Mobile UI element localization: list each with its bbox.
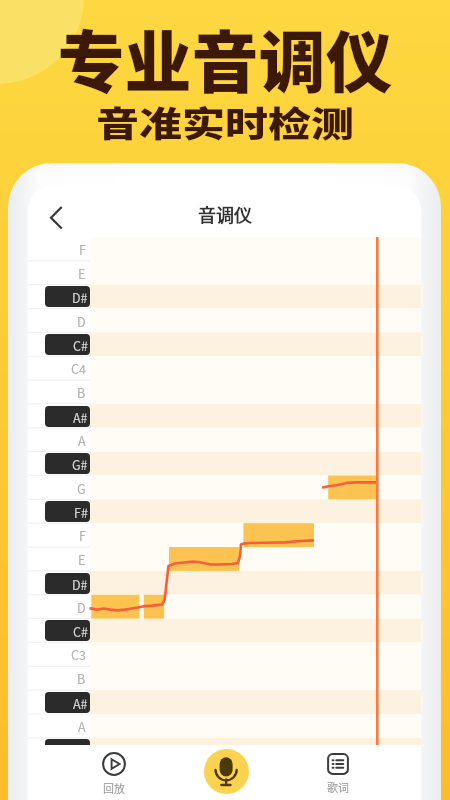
staticText: E — [78, 264, 86, 282]
staticText: D — [77, 598, 86, 616]
staticText: 回放 — [103, 780, 125, 796]
staticText: E — [78, 550, 86, 568]
staticText: D# — [72, 575, 88, 593]
staticText: F — [79, 526, 86, 544]
staticText: C# — [73, 622, 88, 640]
staticText: C3 — [71, 645, 86, 663]
staticText: D — [77, 312, 86, 330]
button[interactable]: Back — [39, 197, 77, 235]
staticText: A — [78, 431, 86, 449]
staticText: C4 — [71, 359, 86, 377]
button[interactable]: 回放 — [84, 745, 144, 796]
staticText: C# — [73, 336, 88, 354]
staticText: A# — [73, 694, 88, 712]
staticText: F — [79, 240, 86, 258]
staticText: G# — [72, 455, 88, 473]
staticText: G# — [72, 741, 88, 759]
staticText: A# — [73, 408, 88, 426]
staticText: F# — [74, 503, 88, 521]
staticText: B — [77, 669, 86, 687]
staticText: 音准实时检测 — [0, 97, 450, 147]
button[interactable]: Record — [204, 749, 249, 794]
staticText: 专业音调仪 — [0, 9, 450, 106]
staticText: 歌词 — [327, 779, 349, 795]
staticText: D# — [72, 288, 88, 306]
staticText: A — [78, 717, 86, 735]
staticText: 音调仪 — [198, 201, 252, 227]
button[interactable]: 歌词 — [308, 745, 368, 795]
staticText: G — [77, 479, 86, 497]
staticText: B — [77, 383, 86, 401]
